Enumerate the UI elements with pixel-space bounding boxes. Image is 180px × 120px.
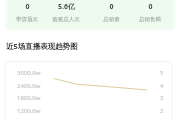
staticText: 带货场次 [16,16,38,23]
staticText: 近5场直播表现趋势图 [6,41,78,51]
staticText: 5 [160,69,164,77]
staticText: 总销量 [103,16,120,23]
staticText: 1800.0w [17,94,41,102]
staticText: 观看总人次 [52,16,80,23]
staticText: 3 [160,94,164,102]
staticText: 3000.0w [17,69,41,77]
button[interactable]: 0 [89,2,133,23]
staticText: 1200.0w [17,107,41,115]
staticText: 0 [148,2,153,12]
staticText: 5.6亿 [58,2,75,12]
staticText: 0 [25,2,30,12]
staticText: 2 [160,107,164,115]
staticText: 4 [160,82,164,90]
staticText: 2400.0w [17,82,41,90]
button[interactable]: 0 [128,2,172,23]
staticText: 总销售额 [139,16,161,23]
button[interactable]: 5.6亿 [44,2,88,23]
button[interactable]: 0 [5,2,49,23]
staticText: 0 [109,2,114,12]
